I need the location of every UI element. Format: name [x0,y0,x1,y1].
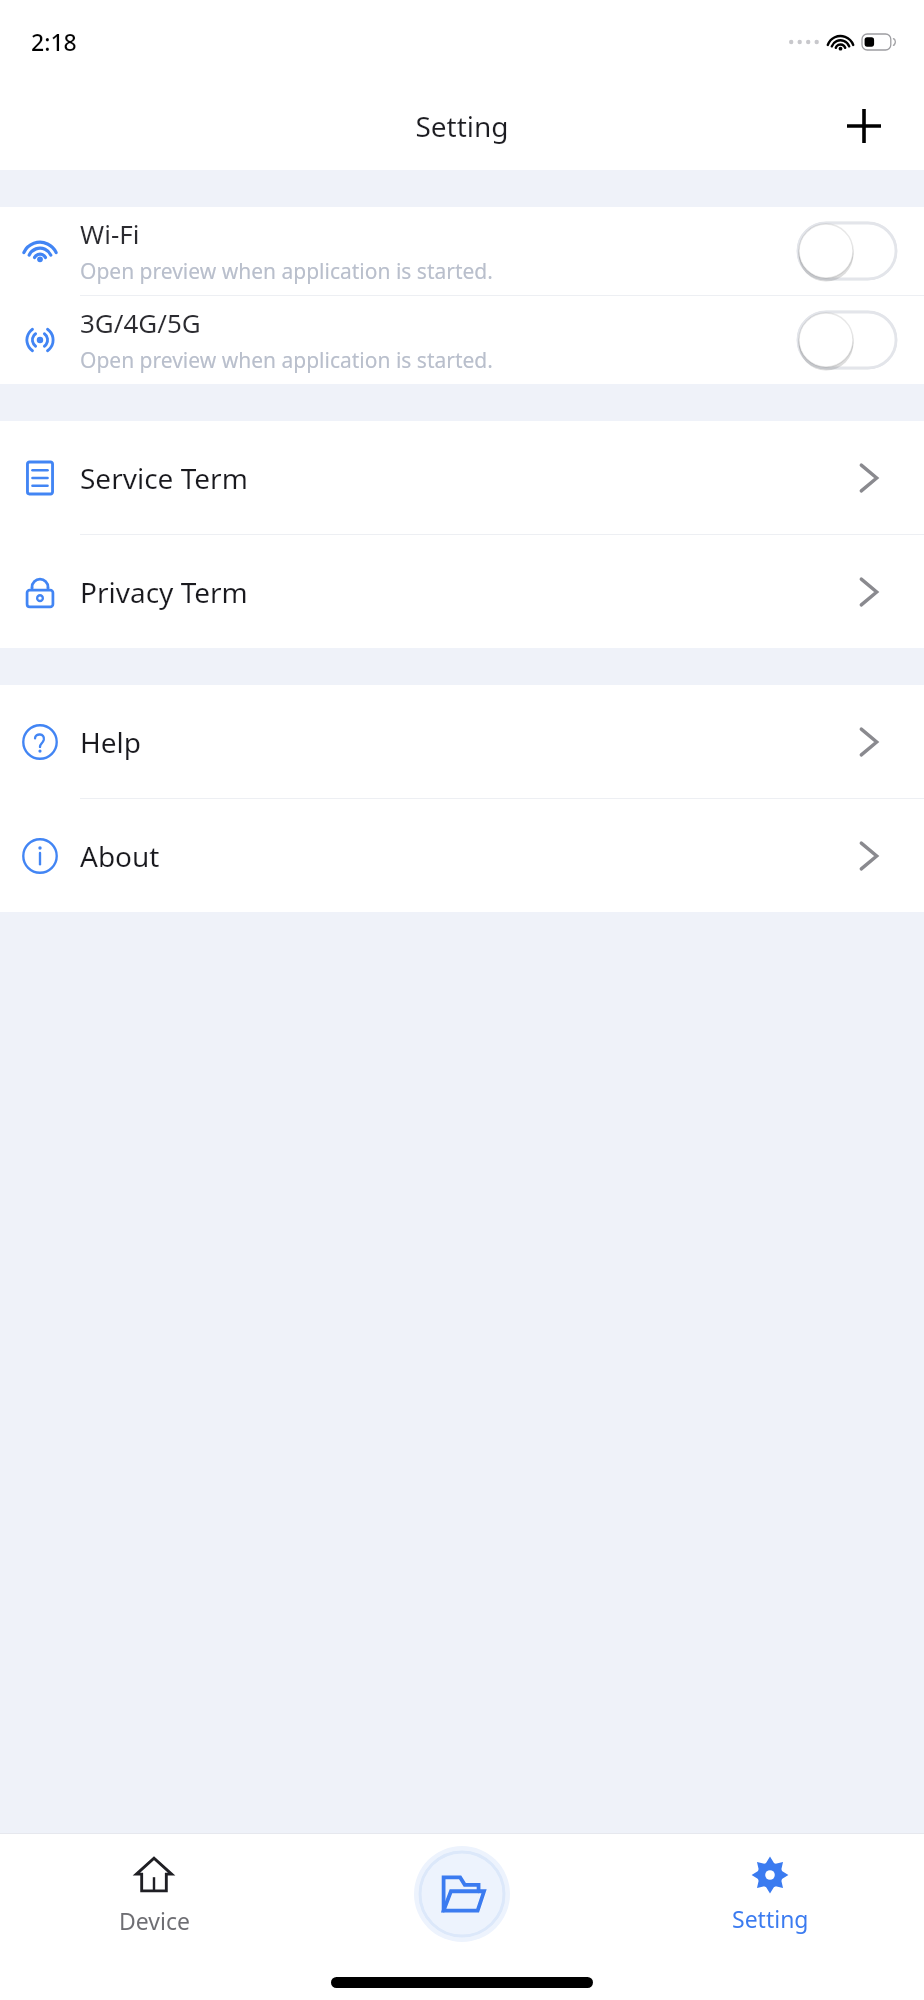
staticText: 3G/4G/5G [80,305,201,340]
staticText: Open preview when application is started… [80,257,493,286]
staticText: Device [119,1905,190,1936]
button[interactable]: Files [308,1834,616,1954]
button[interactable]: About [0,799,924,912]
staticText: Service Term [80,459,858,497]
button[interactable]: Device [0,1834,308,1954]
button[interactable]: Setting [616,1834,924,1954]
button[interactable]: Wi-Fi [0,207,924,295]
staticText: Wi-Fi [80,216,140,251]
staticText: Help [80,723,858,761]
staticText: 2:18 [31,26,77,57]
button[interactable]: Privacy Term [0,535,924,648]
staticText: Setting [732,1903,809,1934]
button[interactable]: Service Term [0,421,924,534]
staticText: About [80,837,858,875]
button[interactable]: Wi-Fi toggle [798,223,896,279]
button[interactable]: Add [840,102,888,150]
staticText: Open preview when application is started… [80,346,493,375]
button[interactable]: 3G/4G/5G toggle [798,312,896,368]
staticText: Setting [415,107,509,145]
staticText: Privacy Term [80,573,858,611]
button[interactable]: Help [0,685,924,798]
button[interactable]: 3G/4G/5G [0,296,924,384]
